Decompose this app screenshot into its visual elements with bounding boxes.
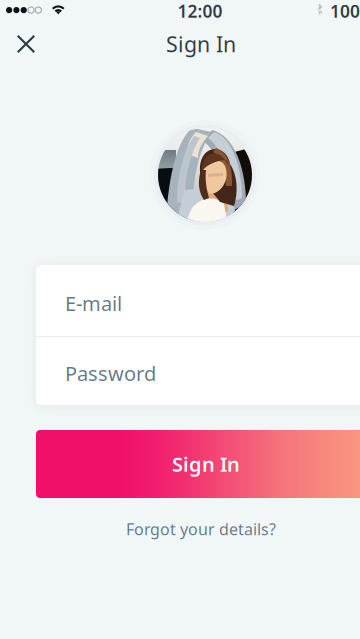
staticText: 100% [330,0,360,22]
staticText: Forgot your details? [126,518,276,540]
button[interactable]: Close [5,23,47,65]
staticText: E-mail [65,290,122,317]
staticText: Sign In [172,451,240,477]
button[interactable]: Sign In [36,430,360,498]
staticText: Password [65,360,156,387]
staticText: Sign In [166,30,236,58]
staticText: 12:00 [177,0,222,22]
button[interactable]: Forgot your details? [91,518,311,540]
